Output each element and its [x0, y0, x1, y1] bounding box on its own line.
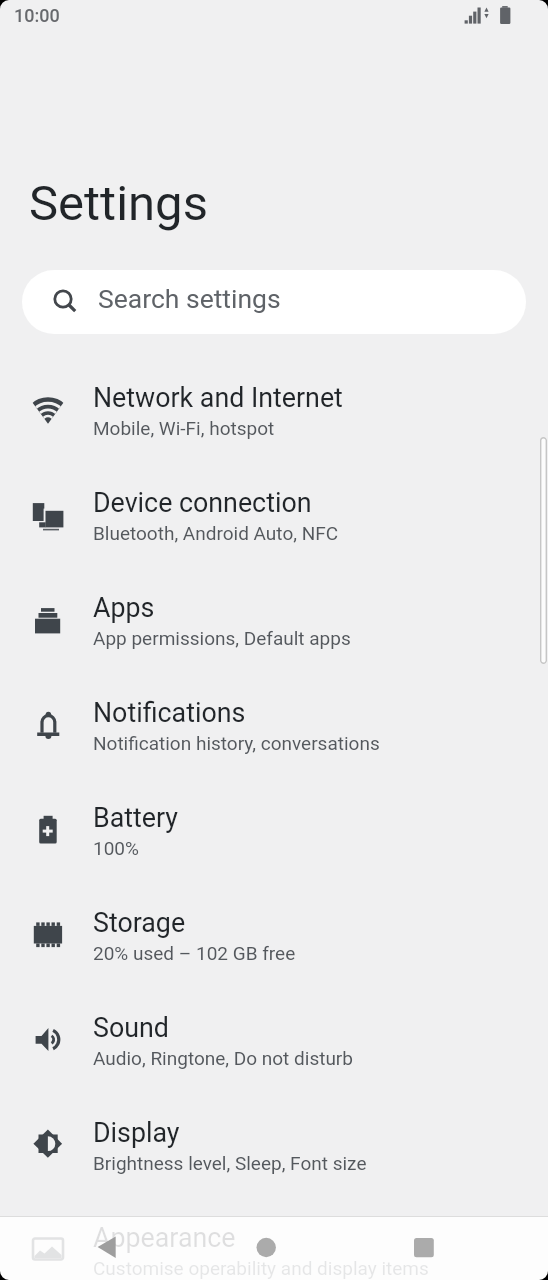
- button[interactable]: [402, 1226, 446, 1270]
- staticText: Brightness level, Sleep, Font size: [93, 1152, 367, 1174]
- staticText: Apps: [93, 592, 155, 623]
- staticText: 10:00: [14, 5, 60, 26]
- staticText: Sound: [93, 1012, 169, 1043]
- staticText: Audio, Ringtone, Do not disturb: [93, 1047, 353, 1069]
- staticText: Customise operability and display items: [93, 1257, 429, 1279]
- button[interactable]: Search settings: [22, 270, 526, 334]
- button[interactable]: Battery: [0, 778, 548, 883]
- staticText: Appearance: [93, 1222, 236, 1253]
- staticText: Notifications: [93, 697, 246, 728]
- button[interactable]: Sound: [0, 988, 548, 1093]
- staticText: Search settings: [98, 283, 281, 314]
- button[interactable]: Device connection: [0, 463, 548, 568]
- staticText: App permissions, Default apps: [93, 627, 351, 649]
- button[interactable]: Apps: [0, 568, 548, 673]
- button[interactable]: Appearance: [0, 1198, 548, 1280]
- staticText: Settings: [29, 175, 208, 232]
- staticText: Notification history, conversations: [93, 732, 380, 754]
- staticText: Mobile, Wi-Fi, hotspot: [93, 417, 275, 439]
- staticText: Network and Internet: [93, 382, 343, 413]
- button[interactable]: Storage: [0, 883, 548, 988]
- staticText: 20% used – 102 GB free: [93, 942, 296, 964]
- button[interactable]: [244, 1226, 288, 1270]
- staticText: Display: [93, 1117, 180, 1148]
- staticText: 100%: [93, 837, 139, 859]
- staticText: Battery: [93, 802, 179, 833]
- staticText: Bluetooth, Android Auto, NFC: [93, 522, 339, 544]
- button[interactable]: Network and Internet: [0, 358, 548, 463]
- staticText: Device connection: [93, 487, 312, 518]
- button[interactable]: [86, 1226, 130, 1270]
- button[interactable]: Notifications: [0, 673, 548, 778]
- staticText: Storage: [93, 907, 186, 938]
- button[interactable]: Display: [0, 1093, 548, 1198]
